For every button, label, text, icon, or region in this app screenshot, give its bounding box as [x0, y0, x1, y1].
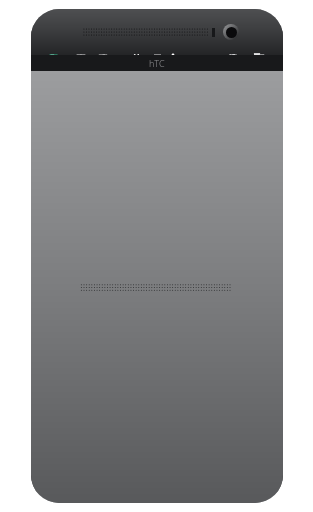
- staticText: hTC: [149, 57, 165, 69]
